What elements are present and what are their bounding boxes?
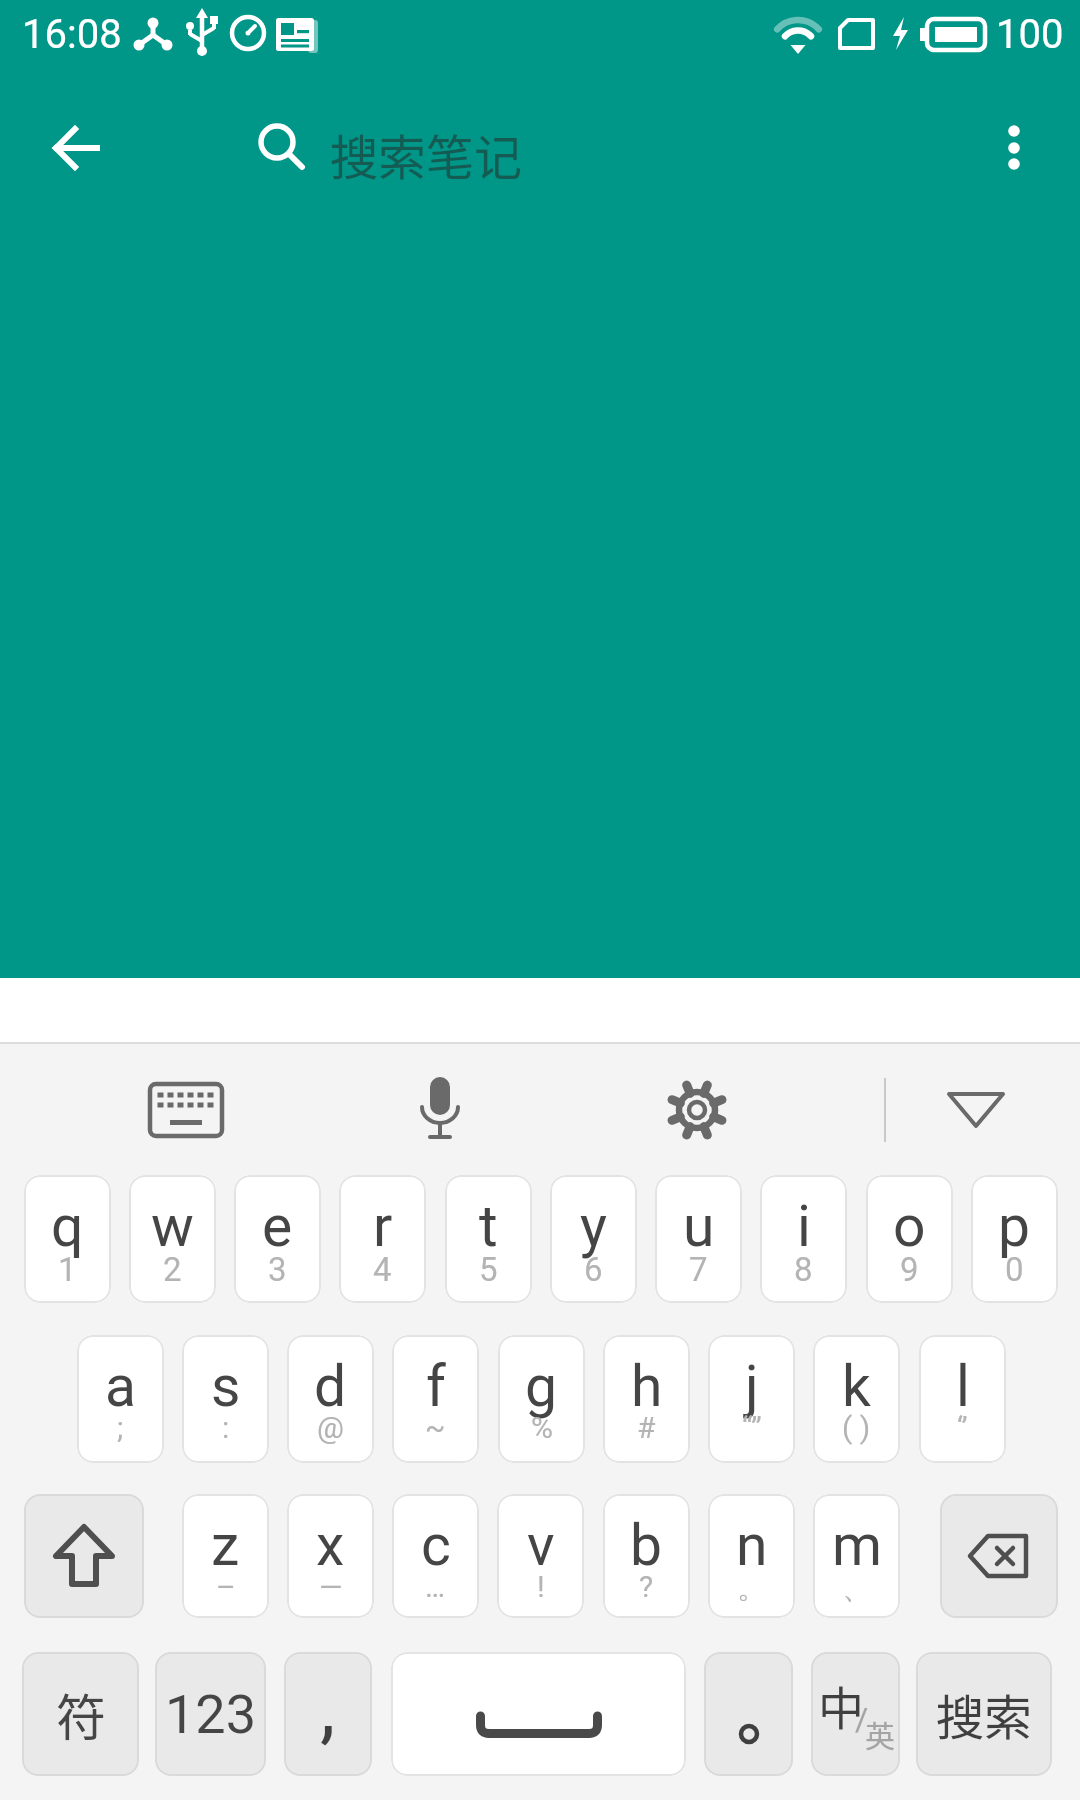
staticText: w — [151, 1193, 194, 1260]
button[interactable]: h — [603, 1335, 690, 1463]
staticText: f — [426, 1353, 446, 1420]
button[interactable]: x — [287, 1494, 374, 1618]
staticText: ? — [639, 1569, 654, 1604]
button[interactable]: b — [603, 1494, 690, 1618]
staticText: t — [479, 1193, 498, 1260]
staticText: , — [320, 1662, 336, 1753]
staticText: 。 — [737, 1569, 767, 1607]
button[interactable] — [40, 112, 112, 184]
button[interactable]: o — [866, 1175, 953, 1303]
button[interactable]: i — [760, 1175, 847, 1303]
staticText: 9 — [900, 1250, 919, 1289]
staticText: ; — [117, 1410, 124, 1445]
button[interactable]: t — [445, 1175, 532, 1303]
staticText: q — [51, 1193, 84, 1260]
staticText: 1 — [58, 1250, 77, 1289]
button[interactable]: 搜索笔记 — [240, 86, 880, 210]
staticText: ( ) — [842, 1410, 871, 1445]
staticText: 英 — [865, 1712, 895, 1755]
staticText: 123 — [165, 1683, 257, 1746]
staticText: @ — [317, 1410, 344, 1445]
button[interactable]: u — [655, 1175, 742, 1303]
staticText: j — [745, 1353, 759, 1420]
staticText: r — [373, 1193, 393, 1260]
staticText: c — [421, 1512, 451, 1579]
button[interactable] — [391, 1652, 686, 1776]
staticText: 6 — [584, 1250, 603, 1289]
staticText: 中 — [818, 1672, 864, 1739]
button[interactable]: w — [129, 1175, 216, 1303]
staticText: v — [527, 1512, 555, 1579]
button[interactable]: r — [339, 1175, 426, 1303]
button[interactable]: z — [182, 1494, 269, 1618]
button[interactable]: 搜索 — [916, 1652, 1052, 1776]
button[interactable]: n — [708, 1494, 795, 1618]
staticText: 4 — [373, 1250, 392, 1289]
button[interactable]: f — [392, 1335, 479, 1463]
button[interactable] — [978, 112, 1050, 184]
staticText: 2 — [163, 1250, 182, 1289]
button[interactable]: a — [77, 1335, 164, 1463]
button[interactable] — [140, 1068, 232, 1152]
button[interactable]: d — [287, 1335, 374, 1463]
staticText: n — [736, 1512, 768, 1579]
button[interactable]: e — [234, 1175, 321, 1303]
staticText: a — [105, 1353, 137, 1420]
button[interactable]: k — [813, 1335, 900, 1463]
staticText: o — [893, 1193, 926, 1260]
staticText: b — [630, 1512, 663, 1579]
button[interactable]: s — [182, 1335, 269, 1463]
staticText: h — [631, 1353, 663, 1420]
button[interactable]: q — [24, 1175, 111, 1303]
staticText: x — [316, 1512, 345, 1579]
staticText: # — [637, 1410, 656, 1445]
staticText: 16:08 — [22, 11, 122, 58]
staticText: 符 — [56, 1678, 106, 1750]
button[interactable]: m — [813, 1494, 900, 1618]
staticText: — — [319, 1569, 343, 1604]
staticText: y — [580, 1193, 607, 1260]
staticText: l — [956, 1353, 970, 1420]
button[interactable]: j — [708, 1335, 795, 1463]
button[interactable]: 123 — [155, 1652, 266, 1776]
staticText: 0 — [1005, 1250, 1024, 1289]
staticText: ! — [537, 1569, 545, 1604]
staticText: g — [525, 1353, 558, 1420]
button[interactable] — [930, 1068, 1022, 1152]
staticText: 7 — [689, 1250, 708, 1289]
staticText: z — [211, 1512, 240, 1579]
staticText: 搜索笔记 — [330, 119, 523, 189]
staticText: e — [262, 1193, 293, 1260]
button[interactable]: v — [497, 1494, 584, 1618]
staticText: u — [683, 1193, 715, 1260]
button[interactable] — [24, 1494, 144, 1618]
button[interactable] — [704, 1652, 793, 1776]
staticText: ~ — [425, 1410, 446, 1445]
staticText: k — [842, 1353, 871, 1420]
button[interactable]: g — [498, 1335, 585, 1463]
staticText: … — [425, 1569, 446, 1604]
staticText: 、 — [842, 1569, 872, 1607]
staticText: / — [855, 1700, 869, 1738]
button[interactable]: 符 — [22, 1652, 139, 1776]
button[interactable] — [651, 1068, 743, 1152]
button[interactable] — [394, 1068, 486, 1152]
button[interactable] — [940, 1494, 1058, 1618]
staticText: s — [211, 1353, 241, 1420]
staticText: p — [998, 1193, 1031, 1260]
staticText: d — [314, 1353, 347, 1420]
button[interactable]: y — [550, 1175, 637, 1303]
button[interactable]: , — [284, 1652, 372, 1776]
button[interactable]: l — [919, 1335, 1006, 1463]
staticText: : — [222, 1410, 230, 1445]
staticText: – — [216, 1569, 236, 1604]
staticText: 搜索 — [936, 1679, 1033, 1749]
staticText: 3 — [268, 1250, 287, 1289]
staticText: 5 — [479, 1250, 498, 1289]
button[interactable]: 中 — [811, 1652, 900, 1776]
button[interactable]: p — [971, 1175, 1058, 1303]
button[interactable]: c — [392, 1494, 479, 1618]
staticText: “” — [742, 1410, 762, 1445]
staticText: i — [797, 1193, 811, 1260]
staticText: m — [832, 1512, 882, 1579]
